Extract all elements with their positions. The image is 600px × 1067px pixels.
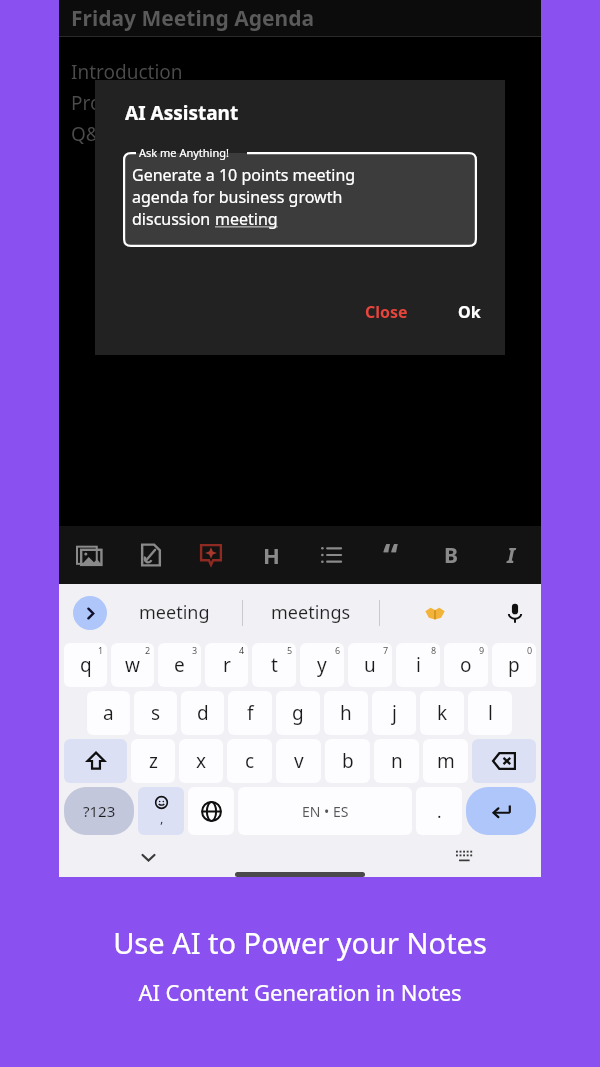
staticText: g — [292, 700, 304, 726]
button[interactable]: Change language — [188, 787, 234, 835]
button[interactable]: d — [181, 691, 224, 735]
staticText: AI Content Generation in Notes — [138, 977, 462, 1007]
button[interactable]: p — [492, 643, 536, 687]
button[interactable]: z — [131, 739, 175, 783]
button[interactable]: Keyboard settings — [449, 842, 479, 872]
staticText: f — [247, 700, 254, 726]
button[interactable]: Backspace — [472, 739, 536, 783]
button[interactable]: Ok — [448, 293, 491, 331]
button[interactable]: AI assistant — [181, 526, 241, 584]
staticText: 7 — [383, 644, 389, 656]
button[interactable]: u — [348, 643, 392, 687]
staticText: meeting — [139, 600, 210, 625]
button[interactable]: r — [205, 643, 248, 687]
button[interactable]: EN • ES — [238, 787, 412, 835]
button[interactable]: Italic — [481, 526, 541, 584]
staticText: z — [149, 748, 158, 774]
staticText: ?123 — [83, 801, 116, 821]
staticText: r — [223, 652, 231, 678]
staticText: j — [392, 700, 397, 726]
button[interactable]: Bold — [421, 526, 481, 584]
staticText: meetings — [271, 600, 351, 625]
button[interactable]: o — [444, 643, 488, 687]
button[interactable]: meeting — [107, 584, 242, 641]
staticText: d — [197, 700, 209, 726]
button[interactable]: Close — [355, 293, 418, 331]
button[interactable]: Quote — [361, 526, 421, 584]
staticText: x — [196, 748, 207, 774]
button[interactable]: Attach file — [120, 526, 181, 584]
staticText: 1 — [98, 644, 104, 656]
staticText: 2 — [145, 644, 151, 656]
staticText: e — [174, 652, 185, 678]
button[interactable]: t — [252, 643, 296, 687]
button[interactable]: b — [325, 739, 370, 783]
button[interactable]: Shift — [64, 739, 127, 783]
staticText: I — [507, 541, 516, 570]
button[interactable]: a — [87, 691, 130, 735]
staticText: h — [340, 700, 352, 726]
button[interactable]: w — [111, 643, 154, 687]
button[interactable]: Insert image — [59, 526, 120, 584]
button[interactable]: meetings — [243, 584, 379, 641]
staticText: . — [437, 800, 442, 823]
staticText: AI Assistant — [125, 100, 239, 126]
button[interactable]: e — [158, 643, 201, 687]
staticText: Q&A — [71, 121, 112, 147]
staticText: o — [460, 652, 472, 678]
staticText: Progress — [71, 90, 150, 116]
staticText: Introduction — [71, 59, 183, 85]
button[interactable]: i — [396, 643, 440, 687]
staticText: a — [103, 700, 114, 726]
staticText: b — [342, 748, 354, 774]
staticText: Friday Meeting Agenda — [71, 4, 314, 33]
staticText: EN • ES — [302, 802, 349, 821]
button[interactable]: q — [64, 643, 107, 687]
staticText: m — [437, 748, 455, 774]
staticText: 3 — [192, 644, 198, 656]
staticText: agenda for business growth — [132, 186, 343, 208]
staticText: 6 — [335, 644, 341, 656]
button[interactable]: n — [374, 739, 419, 783]
button[interactable]: Bullet list — [301, 526, 361, 584]
button[interactable]: f — [228, 691, 272, 735]
staticText: “ — [383, 532, 399, 578]
staticText: meeting — [215, 208, 278, 230]
staticText: Use AI to Power your Notes — [113, 923, 487, 962]
button[interactable]: y — [300, 643, 344, 687]
staticText: 5 — [287, 644, 293, 656]
button[interactable]: Hide keyboard — [131, 840, 165, 874]
staticText: 0 — [527, 644, 533, 656]
button[interactable]: s — [134, 691, 177, 735]
button[interactable]: j — [372, 691, 416, 735]
button[interactable]: c — [227, 739, 272, 783]
staticText: Ok — [458, 301, 481, 323]
button[interactable]: Enter — [466, 787, 536, 835]
staticText: t — [271, 652, 278, 678]
staticText: 9 — [479, 644, 485, 656]
button[interactable]: Voice input — [489, 584, 541, 641]
button[interactable]: . — [416, 787, 462, 835]
staticText: l — [488, 700, 493, 726]
button[interactable]: More suggestions — [73, 596, 107, 630]
staticText: Close — [365, 301, 408, 323]
button[interactable]: Emoji and comma — [138, 787, 184, 835]
button[interactable]: l — [468, 691, 512, 735]
button[interactable]: x — [179, 739, 223, 783]
button[interactable]: m — [423, 739, 468, 783]
button[interactable]: h — [324, 691, 368, 735]
staticText: i — [416, 652, 421, 678]
button[interactable]: k — [420, 691, 464, 735]
button[interactable]: g — [276, 691, 320, 735]
button[interactable]: ?123 — [64, 787, 134, 835]
button[interactable]: Handshake emoji — [380, 584, 489, 641]
button[interactable]: v — [276, 739, 321, 783]
staticText: 8 — [431, 644, 437, 656]
staticText: discussion — [132, 208, 215, 230]
staticText: k — [437, 700, 448, 726]
staticText: H — [263, 540, 280, 570]
staticText: c — [245, 748, 255, 774]
staticText: v — [294, 748, 304, 774]
button[interactable]: Heading — [241, 526, 301, 584]
staticText: q — [80, 652, 92, 678]
